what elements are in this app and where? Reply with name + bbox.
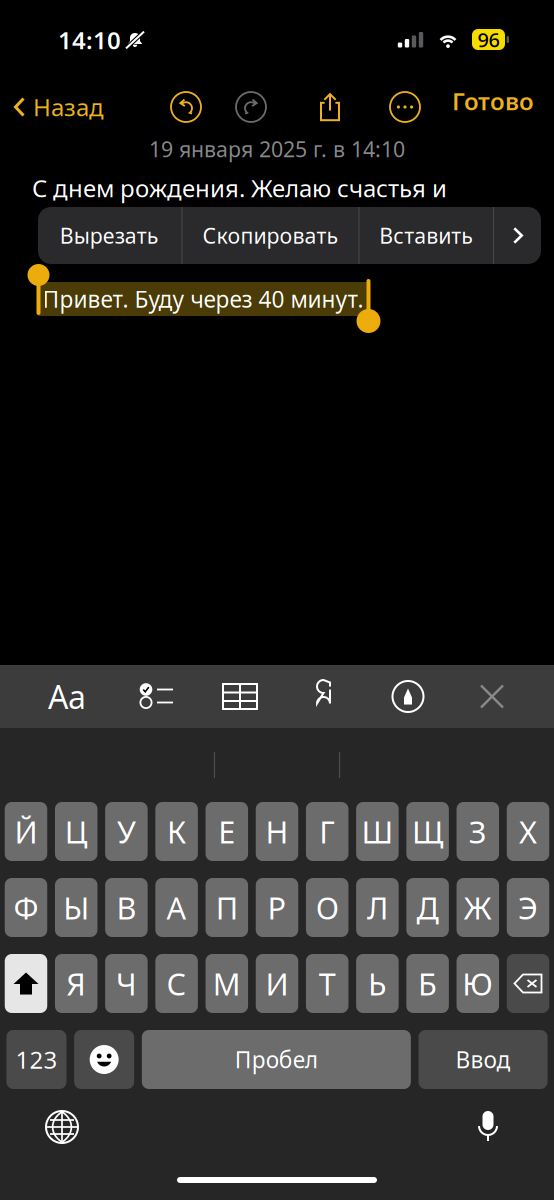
staticText: 14:10 (58, 24, 121, 56)
staticText: К (167, 811, 186, 852)
staticText: В (116, 887, 136, 928)
staticText: 123 (15, 1044, 57, 1075)
staticText: Вставить (379, 221, 473, 250)
staticText: З (469, 811, 487, 852)
staticText: Ввод (456, 1044, 511, 1074)
staticText: Скопировать (202, 221, 338, 250)
button[interactable]: С (155, 954, 198, 1013)
button[interactable]: П (206, 878, 248, 937)
staticText: Э (518, 887, 538, 928)
button[interactable]: Пробел (142, 1030, 411, 1089)
button[interactable]: Ж (456, 878, 499, 937)
staticText: Ч (116, 963, 137, 1004)
button[interactable]: Х (507, 802, 549, 861)
button[interactable]: Г (306, 802, 348, 861)
staticText: Ю (462, 963, 493, 1004)
staticText: О (316, 887, 339, 928)
button[interactable]: Ю (456, 954, 499, 1013)
button[interactable]: А (155, 878, 198, 937)
button[interactable]: Undo (171, 92, 201, 122)
button[interactable]: Ы (55, 878, 97, 937)
button[interactable]: Э (507, 878, 549, 937)
staticText: Щ (412, 811, 443, 852)
button[interactable]: 123 (6, 1030, 66, 1089)
button[interactable]: Emoji (74, 1030, 134, 1089)
staticText: Готово (452, 85, 534, 117)
staticText: Ф (13, 887, 38, 928)
button[interactable]: И (256, 954, 298, 1013)
button[interactable]: Shift (5, 954, 47, 1013)
staticText: А (167, 887, 187, 928)
button[interactable]: Д (406, 878, 449, 937)
staticText: Назад (33, 91, 104, 123)
button[interactable]: Dictate (476, 1110, 500, 1144)
staticText: Д (417, 887, 439, 928)
button[interactable]: Share (315, 92, 345, 122)
button[interactable]: З (456, 802, 499, 861)
button[interactable]: More actions (494, 207, 542, 264)
staticText: Т (319, 963, 336, 1004)
button[interactable]: Вырезать (37, 207, 181, 264)
button[interactable]: Назад (14, 89, 104, 125)
button[interactable]: Ф (5, 878, 47, 937)
button[interactable]: Вставить (359, 207, 493, 264)
button[interactable]: Close (470, 676, 514, 716)
button[interactable]: Table (218, 676, 262, 716)
button[interactable]: В (105, 878, 148, 937)
button[interactable]: Format (40, 665, 94, 728)
staticText: Х (519, 811, 537, 852)
button[interactable]: More (390, 92, 420, 122)
button[interactable]: Ь (356, 954, 399, 1013)
staticText: Я (66, 963, 86, 1004)
staticText: Привет. Буду через 40 минут. (42, 284, 363, 314)
staticText: П (216, 887, 238, 928)
staticText: 19 января 2025 г. в 14:10 (149, 135, 405, 163)
staticText: Л (367, 887, 388, 928)
button[interactable]: Checklist (134, 676, 178, 716)
staticText: Б (418, 963, 437, 1004)
staticText: Е (218, 811, 235, 852)
button[interactable]: Скопировать (182, 207, 358, 264)
staticText: Ы (63, 887, 89, 928)
staticText: У (117, 811, 136, 852)
staticText: Й (14, 811, 37, 852)
staticText: И (265, 963, 288, 1004)
staticText: Г (319, 811, 335, 852)
staticText: Р (267, 887, 286, 928)
staticText: 96 (477, 26, 499, 53)
button[interactable]: Р (256, 878, 298, 937)
staticText: Ш (361, 811, 393, 852)
button[interactable]: Л (356, 878, 399, 937)
staticText: Ж (464, 887, 492, 928)
staticText: Ь (368, 963, 387, 1004)
staticText: Aa (48, 675, 86, 718)
staticText: Пробел (235, 1044, 318, 1074)
staticText: С днем рождения. Желаю счастья и (32, 172, 447, 204)
button[interactable]: Redo (236, 92, 266, 122)
button[interactable]: М (206, 954, 248, 1013)
staticText: С (167, 963, 187, 1004)
button[interactable]: Ввод (419, 1030, 548, 1089)
button[interactable]: Ш (356, 802, 399, 861)
button[interactable]: У (105, 802, 148, 861)
button[interactable]: Готово (452, 83, 534, 119)
staticText: Ц (65, 811, 88, 852)
button[interactable]: Ч (105, 954, 148, 1013)
button[interactable]: Я (55, 954, 97, 1013)
button[interactable]: Ц (55, 802, 97, 861)
button[interactable]: Attach (302, 676, 346, 716)
staticText: Вырезать (60, 221, 159, 250)
button[interactable]: Markup (386, 676, 430, 716)
button[interactable]: Switch keyboard (46, 1111, 78, 1143)
button[interactable]: Н (256, 802, 298, 861)
staticText: М (213, 963, 241, 1004)
button[interactable]: Е (206, 802, 248, 861)
button[interactable]: Delete (507, 954, 549, 1013)
staticText: Н (265, 811, 288, 852)
button[interactable]: Й (5, 802, 47, 861)
button[interactable]: Б (406, 954, 449, 1013)
button[interactable]: К (155, 802, 198, 861)
button[interactable]: Т (306, 954, 348, 1013)
button[interactable]: О (306, 878, 348, 937)
button[interactable]: Щ (406, 802, 449, 861)
